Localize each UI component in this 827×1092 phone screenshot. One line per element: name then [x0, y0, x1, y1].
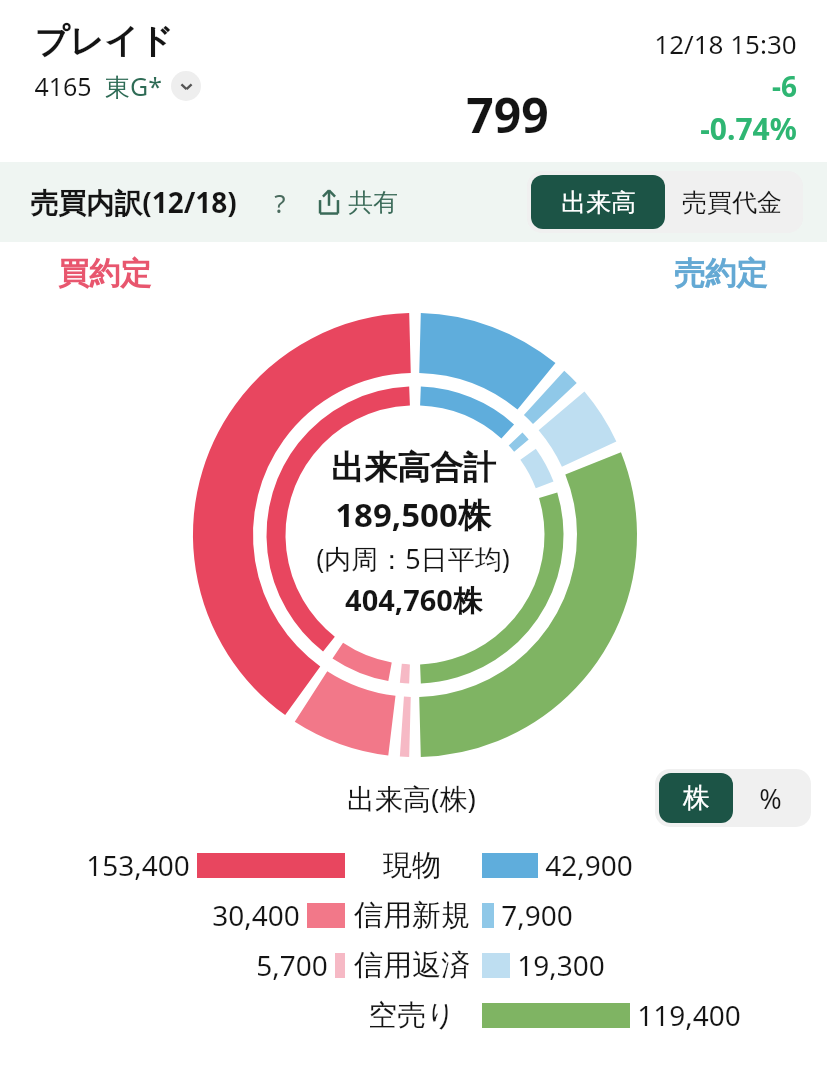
staticText: (内周：5日平均): [316, 540, 510, 577]
staticText: 153,400: [86, 846, 190, 884]
button[interactable]: 30,400: [0, 890, 827, 940]
button[interactable]: %: [733, 773, 807, 823]
staticText: 5,700: [256, 946, 328, 984]
staticText: プレイド: [34, 20, 174, 63]
staticText: 売買代金: [682, 187, 782, 218]
staticText: 出来高: [561, 187, 636, 218]
staticText: 株: [683, 781, 710, 815]
staticText: 現物: [383, 847, 441, 884]
staticText: -0.74%: [700, 108, 797, 149]
staticText: 共有: [348, 187, 398, 218]
staticText: 119,400: [637, 996, 741, 1034]
staticText: 東G*: [105, 69, 162, 103]
staticText: 12/18 15:30: [654, 26, 797, 61]
button[interactable]: 売買代金: [665, 175, 799, 229]
button[interactable]: 共有: [309, 182, 402, 222]
staticText: %: [759, 780, 782, 817]
staticText: 出来高合計: [331, 447, 496, 489]
staticText: 799: [466, 82, 549, 147]
staticText: 信用新規: [354, 897, 470, 934]
button[interactable]: 空売り: [0, 990, 827, 1040]
staticText: 404,760株: [345, 580, 482, 620]
staticText: ?: [274, 185, 286, 220]
button[interactable]: 153,400: [0, 840, 827, 890]
staticText: 出来高(株): [347, 779, 476, 817]
staticText: 信用返済: [354, 947, 470, 984]
button[interactable]: ヘルプ: [261, 183, 299, 221]
staticText: 買約定: [58, 254, 151, 293]
staticText: 4165: [34, 69, 92, 103]
button[interactable]: 出来高: [531, 175, 665, 229]
button[interactable]: 株: [659, 773, 733, 823]
staticText: 売買内訳(12/18): [30, 183, 237, 221]
staticText: -6: [772, 67, 797, 105]
staticText: 売約定: [674, 254, 767, 293]
staticText: 7,900: [501, 896, 573, 934]
button[interactable]: 5,700: [0, 940, 827, 990]
staticText: 42,900: [545, 846, 633, 884]
button[interactable]: 市場を切り替え: [171, 71, 201, 101]
staticText: 189,500株: [335, 492, 491, 537]
staticText: 19,300: [517, 946, 605, 984]
staticText: 30,400: [212, 896, 300, 934]
staticText: 空売り: [368, 997, 456, 1034]
